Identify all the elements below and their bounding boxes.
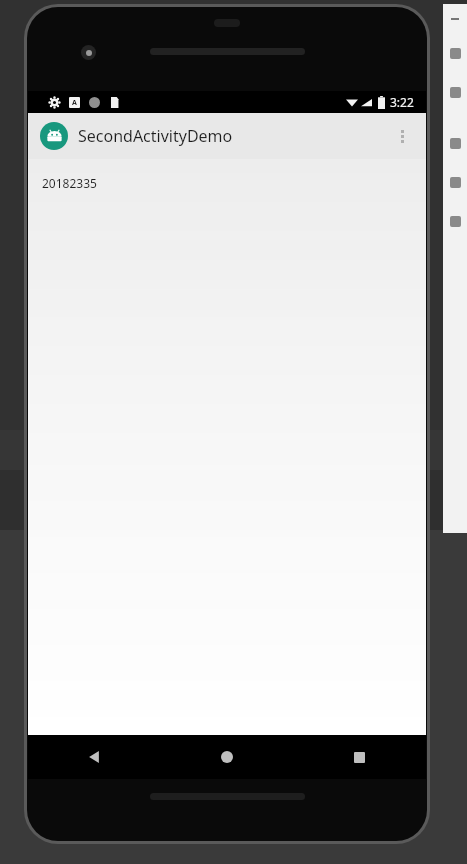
staticText: 20182335 [42, 175, 97, 191]
staticText: SecondActivityDemo [78, 125, 233, 147]
button[interactable]: Recents [293, 735, 426, 779]
button[interactable]: Back [28, 735, 160, 779]
staticText: 3:22 [390, 94, 414, 110]
staticText: A [72, 98, 77, 108]
button[interactable]: Home [160, 735, 293, 779]
button[interactable]: More options [382, 116, 422, 156]
